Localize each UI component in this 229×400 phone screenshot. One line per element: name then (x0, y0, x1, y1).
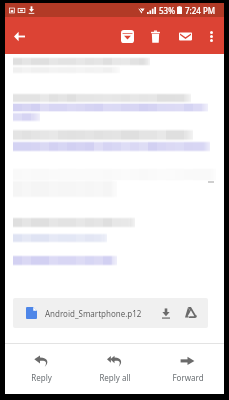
staticText: Reply all (99, 372, 131, 383)
button[interactable]: Forward (151, 344, 224, 394)
staticText: 53% (159, 5, 175, 16)
staticText: Reply (31, 372, 52, 383)
button[interactable]: Archive (115, 21, 140, 51)
button[interactable]: Delete (143, 21, 168, 51)
button[interactable]: Android_Smartphone.p12 (13, 298, 208, 328)
staticText: Forward (172, 372, 204, 383)
button[interactable]: Back (5, 21, 33, 51)
button[interactable]: Download (154, 301, 178, 325)
staticText: 7:24 PM (185, 5, 216, 16)
button[interactable]: Mark as unread (173, 21, 198, 51)
button[interactable]: Reply all (78, 344, 151, 394)
button[interactable]: Save to Drive (179, 301, 203, 325)
staticText: Android_Smartphone.p12 (45, 308, 142, 319)
button[interactable]: Reply (5, 344, 78, 394)
button[interactable]: More options (199, 21, 224, 51)
